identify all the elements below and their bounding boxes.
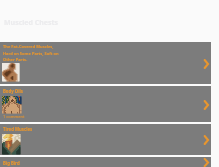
staticText: Big Bird bbox=[3, 160, 20, 166]
other: Open article bbox=[203, 59, 210, 69]
staticText: 1 comment bbox=[3, 114, 25, 119]
other: Open article bbox=[203, 158, 210, 167]
button[interactable]: Big Bird bbox=[0, 157, 219, 167]
staticText: Body Oils bbox=[3, 88, 23, 94]
staticText: Muscled Chests bbox=[4, 18, 59, 28]
button[interactable]: Body Oils bbox=[0, 86, 219, 122]
other: Open article bbox=[203, 100, 210, 110]
staticText: Tired Muscles bbox=[3, 126, 33, 132]
button[interactable]: Tired Muscles bbox=[0, 124, 219, 155]
other: Open article bbox=[203, 135, 210, 145]
button[interactable]: The Fat-Covered Muscles, Hard on Some Pa… bbox=[0, 42, 219, 84]
staticText: The Fat-Covered Muscles, Hard on Some Pa… bbox=[3, 44, 59, 62]
